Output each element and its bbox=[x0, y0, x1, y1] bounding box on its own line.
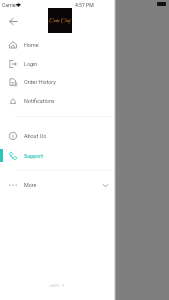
staticText: 4:57 PM bbox=[75, 2, 94, 8]
staticText: More bbox=[24, 182, 37, 188]
button[interactable]: Login bbox=[0, 57, 114, 70]
staticText: Cake Chef bbox=[49, 17, 71, 25]
staticText: v0.51 - 1 bbox=[0, 283, 114, 287]
button[interactable]: About Us bbox=[0, 129, 114, 142]
button[interactable]: Support bbox=[0, 149, 114, 162]
button[interactable]: Home bbox=[0, 38, 114, 51]
button[interactable]: Back bbox=[8, 16, 19, 27]
staticText: Carrier bbox=[2, 2, 18, 8]
staticText: About Us bbox=[24, 133, 46, 139]
button[interactable]: Notifications bbox=[0, 94, 114, 107]
button[interactable]: Order History bbox=[0, 75, 114, 88]
staticText: Login bbox=[24, 61, 38, 67]
button[interactable]: Cake Chef bbox=[48, 8, 72, 33]
button[interactable]: Close navigation drawer bbox=[116, 0, 169, 300]
staticText: Support bbox=[24, 153, 44, 159]
button[interactable]: More bbox=[0, 178, 114, 191]
staticText: Order History bbox=[24, 79, 56, 85]
staticText: Home bbox=[24, 42, 39, 48]
staticText: Notifications bbox=[24, 98, 55, 104]
